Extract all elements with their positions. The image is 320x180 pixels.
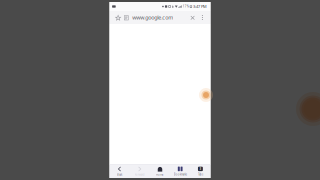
staticText: Home — [156, 173, 164, 176]
button[interactable]: Bookmark — [114, 11, 122, 24]
staticText: 17% — [183, 5, 189, 8]
staticText: Back — [117, 173, 122, 176]
staticText: www.google.com — [132, 14, 173, 21]
staticText: Bookmarks — [174, 173, 187, 176]
button[interactable]: 3 — [190, 164, 210, 178]
staticText: Tabs — [198, 173, 203, 176]
button[interactable]: Bookmarks — [170, 164, 190, 178]
button[interactable]: More options — [198, 11, 207, 24]
staticText: Forward — [135, 173, 145, 176]
staticText: 3:47 PM — [193, 4, 207, 9]
button[interactable]: Site information — [122, 11, 130, 24]
button[interactable]: Forward — [130, 164, 150, 178]
button[interactable]: Back — [109, 164, 130, 178]
button[interactable]: Home — [150, 164, 170, 178]
staticText: 3 — [199, 167, 201, 171]
button[interactable]: Stop loading — [187, 11, 198, 24]
